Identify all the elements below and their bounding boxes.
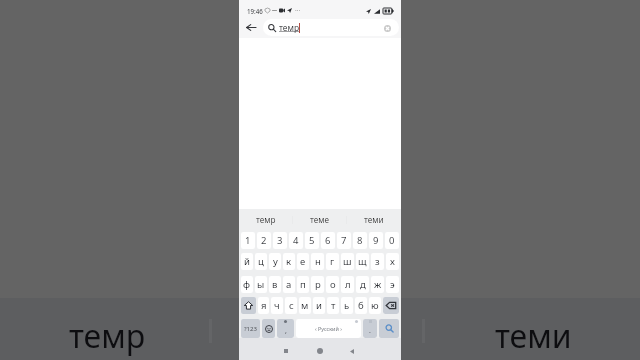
button[interactable]: 8 [353, 232, 367, 249]
staticText: з [375, 255, 380, 268]
staticText: ч [274, 299, 280, 312]
button[interactable]: э [386, 276, 399, 293]
staticText: 5 [309, 234, 315, 247]
staticText: темр [256, 214, 276, 225]
staticText: б [358, 299, 364, 312]
button[interactable]: Backspace [383, 297, 399, 314]
button[interactable]: д [356, 276, 369, 293]
staticText: ‹ Русский › [315, 325, 342, 332]
button[interactable]: темр [263, 19, 399, 36]
button[interactable]: ю [369, 297, 381, 314]
button[interactable]: Back [239, 17, 262, 37]
staticText: о [330, 278, 336, 291]
staticText: теме [310, 214, 330, 225]
button[interactable]: . [363, 319, 377, 338]
staticText: щ [358, 255, 367, 268]
button[interactable]: о [326, 276, 339, 293]
staticText: м [301, 299, 309, 312]
button[interactable]: темр [0, 298, 214, 360]
staticText: 9 [373, 234, 379, 247]
staticText: у [273, 255, 278, 268]
staticText: теме [283, 314, 358, 358]
button[interactable]: н [311, 253, 324, 270]
button[interactable]: 5 [305, 232, 319, 249]
button[interactable]: п [297, 276, 309, 293]
button[interactable]: теме [293, 209, 347, 230]
button[interactable]: 4 [289, 232, 303, 249]
button[interactable]: , [277, 319, 294, 338]
button[interactable]: Home [310, 341, 330, 360]
button[interactable]: ь [341, 297, 353, 314]
button[interactable]: Emoji [262, 319, 275, 338]
staticText: х [390, 255, 395, 268]
button[interactable]: ш [341, 253, 354, 270]
button[interactable]: ц [255, 253, 267, 270]
button[interactable]: у [269, 253, 281, 270]
button[interactable]: а [283, 276, 295, 293]
button[interactable]: Clear search [381, 22, 393, 34]
staticText: темр [69, 314, 146, 358]
staticText: 0 [389, 234, 395, 247]
button[interactable]: теме [214, 298, 427, 360]
staticText: 3 [277, 234, 283, 247]
button[interactable]: л [341, 276, 354, 293]
staticText: . [369, 326, 371, 336]
staticText: ?123 [244, 325, 257, 333]
button[interactable]: з [371, 253, 384, 270]
staticText: теми [364, 214, 384, 225]
button[interactable]: темр [239, 209, 293, 230]
staticText: ··· [295, 6, 301, 15]
button[interactable]: я [258, 297, 269, 314]
staticText: п [300, 278, 306, 291]
button[interactable]: в [269, 276, 281, 293]
staticText: э [390, 278, 395, 291]
staticText: и [316, 299, 322, 312]
staticText: л [345, 278, 351, 291]
button[interactable]: ы [255, 276, 267, 293]
staticText: к [286, 255, 292, 268]
button[interactable]: 3 [273, 232, 287, 249]
button[interactable]: ‹ Русский › [296, 319, 361, 338]
button[interactable]: с [285, 297, 297, 314]
staticText: а [286, 278, 292, 291]
staticText: ф [243, 278, 251, 291]
button[interactable]: теми [427, 298, 640, 360]
button[interactable]: ?123 [241, 319, 260, 338]
button[interactable]: ч [271, 297, 283, 314]
button[interactable]: к [283, 253, 295, 270]
staticText: ь [344, 299, 350, 312]
button[interactable]: ж [371, 276, 384, 293]
button[interactable]: х [386, 253, 399, 270]
button[interactable]: 9 [369, 232, 383, 249]
button[interactable]: щ [356, 253, 369, 270]
staticText: ю [371, 299, 379, 312]
button[interactable]: 0 [385, 232, 399, 249]
button[interactable]: Recent apps [276, 341, 296, 360]
button[interactable]: 2 [257, 232, 271, 249]
button[interactable]: Back [342, 341, 362, 360]
staticText: ж [374, 278, 382, 291]
staticText: с [289, 299, 294, 312]
button[interactable]: е [297, 253, 309, 270]
button[interactable]: и [313, 297, 325, 314]
button[interactable]: б [355, 297, 367, 314]
button[interactable]: г [326, 253, 339, 270]
staticText: ц [258, 255, 264, 268]
staticText: й [244, 255, 250, 268]
button[interactable]: й [241, 253, 253, 270]
button[interactable]: 6 [321, 232, 335, 249]
button[interactable]: р [311, 276, 324, 293]
staticText: 6 [325, 234, 331, 247]
button[interactable]: Shift [241, 297, 256, 314]
staticText: темр [279, 22, 299, 33]
button[interactable]: 7 [337, 232, 351, 249]
button[interactable]: т [327, 297, 339, 314]
staticText: р [315, 278, 321, 291]
staticText: т [331, 299, 336, 312]
staticText: 7 [341, 234, 347, 247]
button[interactable]: теми [347, 209, 401, 230]
button[interactable]: м [299, 297, 311, 314]
button[interactable]: ф [241, 276, 253, 293]
button[interactable]: 1 [241, 232, 255, 249]
button[interactable]: Search [379, 319, 399, 338]
